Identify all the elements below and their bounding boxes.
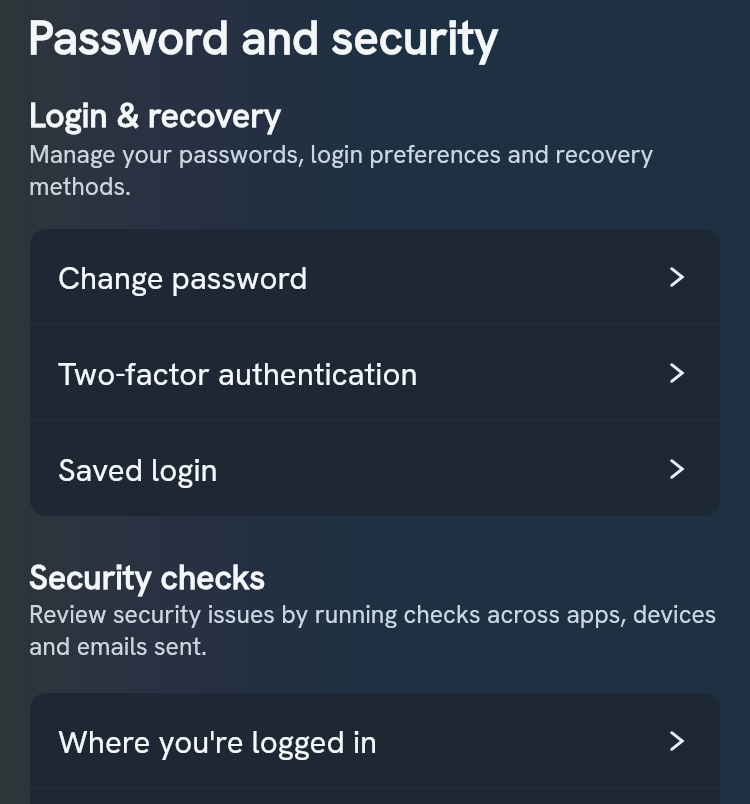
staticText: Review security issues by running checks… xyxy=(29,598,750,663)
staticText: Change password xyxy=(58,258,670,299)
other: Open Two-factor authentication xyxy=(670,360,684,386)
button[interactable]: Change password xyxy=(30,229,720,324)
staticText: Saved login xyxy=(58,450,670,491)
staticText: Password and security xyxy=(28,7,499,68)
other: Open Where you're logged in xyxy=(670,728,684,754)
other: Open Change password xyxy=(670,264,684,290)
other: Open Saved login xyxy=(670,456,684,482)
staticText: Security checks xyxy=(29,555,266,599)
staticText: Where you're logged in xyxy=(58,722,670,763)
button[interactable]: Saved login xyxy=(30,421,720,516)
staticText: Login & recovery xyxy=(29,93,282,137)
staticText: Manage your passwords, login preferences… xyxy=(29,138,723,203)
button[interactable]: Where you're logged in xyxy=(30,693,720,788)
button[interactable]: Two-factor authentication xyxy=(30,325,720,420)
staticText: Two-factor authentication xyxy=(58,354,670,395)
